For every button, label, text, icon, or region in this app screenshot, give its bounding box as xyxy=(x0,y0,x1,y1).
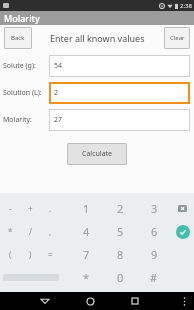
button[interactable]: , xyxy=(40,220,60,243)
staticText: Solution (L): xyxy=(3,88,42,98)
staticText: Enter all known values xyxy=(50,32,145,44)
button[interactable]: ) xyxy=(20,243,40,266)
button[interactable]: 7 xyxy=(69,243,103,266)
button[interactable]: * xyxy=(0,220,20,243)
button[interactable]: 6 xyxy=(137,220,171,243)
staticText: 54 xyxy=(54,61,63,71)
staticText: 9 xyxy=(151,247,158,262)
staticText: 6 xyxy=(151,224,158,239)
button[interactable]: + xyxy=(20,197,40,220)
button[interactable]: 0 xyxy=(103,266,137,289)
button[interactable]: Calculate xyxy=(67,143,127,165)
button[interactable]: * xyxy=(69,266,103,289)
staticText: ) xyxy=(29,249,32,260)
staticText: 2:38 xyxy=(180,2,192,10)
button[interactable]: Recent apps xyxy=(126,292,144,310)
staticText: 1 xyxy=(83,201,90,216)
staticText: 3 xyxy=(151,201,158,216)
staticText: # xyxy=(150,270,158,285)
button[interactable]: 3 xyxy=(137,197,171,220)
staticText: 5 xyxy=(117,224,124,239)
button[interactable]: Clear xyxy=(164,27,190,49)
button[interactable]: = xyxy=(40,243,60,266)
staticText: . xyxy=(49,203,52,214)
staticText: Back xyxy=(11,34,25,42)
button[interactable]: 2 xyxy=(103,197,137,220)
staticText: , xyxy=(49,226,52,237)
staticText: Solute (g): xyxy=(3,61,36,71)
staticText: + xyxy=(28,203,33,214)
button[interactable]: # xyxy=(137,266,171,289)
button[interactable]: 5 xyxy=(103,220,137,243)
button[interactable]: Back xyxy=(4,27,32,49)
staticText: Molarity: xyxy=(3,115,32,125)
staticText: * xyxy=(8,226,13,237)
staticText: 0 xyxy=(117,270,124,285)
button[interactable]: 8 xyxy=(103,243,137,266)
button[interactable]: Enter xyxy=(171,220,194,243)
button[interactable]: More options xyxy=(177,294,191,308)
staticText: 27 xyxy=(54,115,63,125)
button[interactable]: - xyxy=(0,197,20,220)
button[interactable]: / xyxy=(20,220,40,243)
button[interactable]: ( xyxy=(0,243,20,266)
button[interactable]: Home xyxy=(81,292,99,310)
button[interactable]: 9 xyxy=(137,243,171,266)
button[interactable]: Backspace xyxy=(171,197,194,220)
staticText: Clear xyxy=(170,34,185,42)
staticText: - xyxy=(9,203,12,214)
staticText: 4 xyxy=(83,224,90,239)
staticText: 2 xyxy=(54,88,59,98)
button[interactable]: 27 xyxy=(49,109,190,131)
button[interactable]: 2 xyxy=(49,82,190,104)
staticText: 2 xyxy=(117,201,124,216)
button[interactable]: 4 xyxy=(69,220,103,243)
button[interactable]: 54 xyxy=(49,55,190,77)
button[interactable]: 1 xyxy=(69,197,103,220)
staticText: ( xyxy=(9,249,12,260)
staticText: = xyxy=(48,249,53,260)
staticText: Calculate xyxy=(82,149,113,159)
staticText: 8 xyxy=(117,247,124,262)
staticText: * xyxy=(83,270,90,285)
staticText: 7 xyxy=(83,247,90,262)
staticText: Molarity xyxy=(4,12,40,24)
staticText: / xyxy=(29,226,32,237)
button[interactable]: Back xyxy=(36,292,54,310)
